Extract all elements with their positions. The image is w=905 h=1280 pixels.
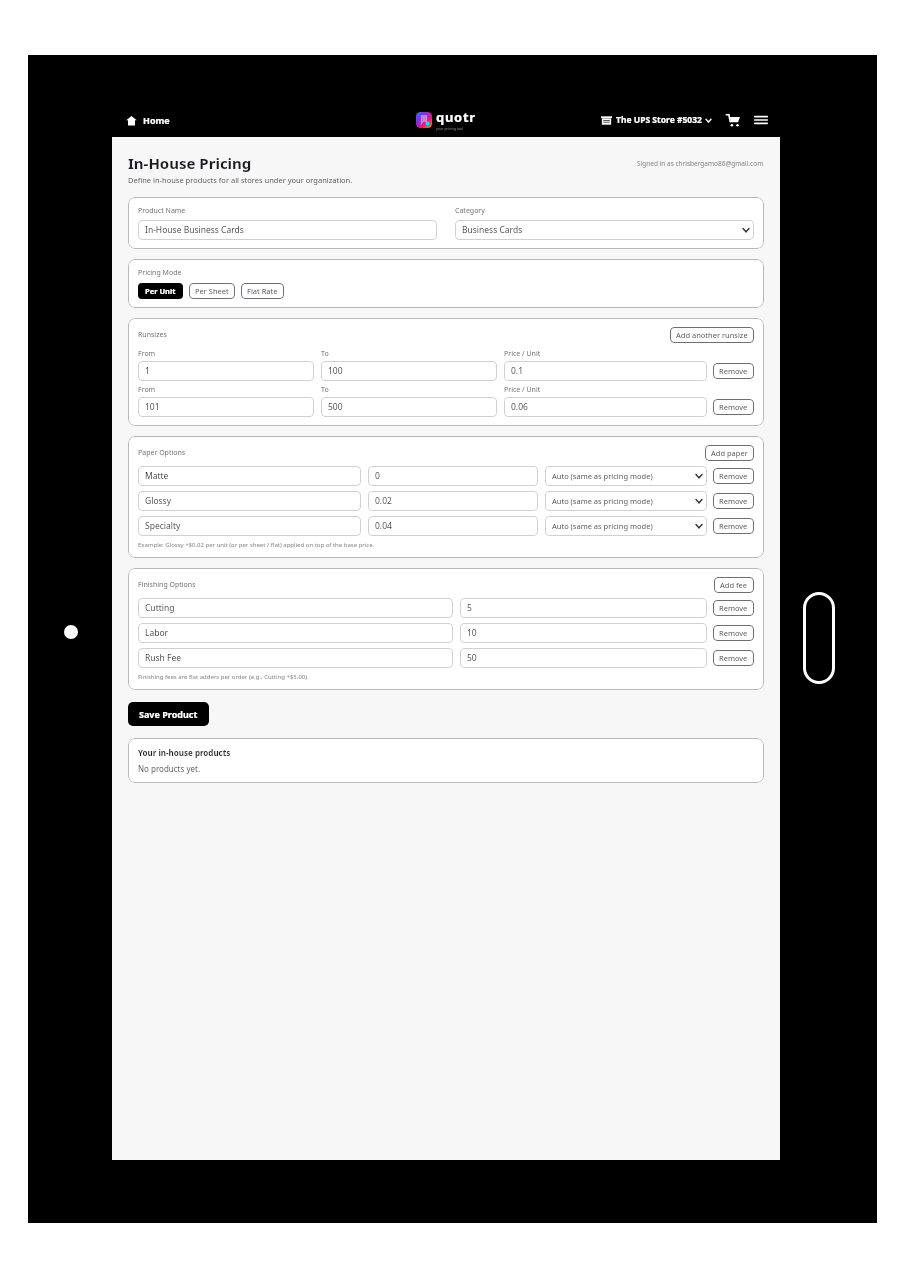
button[interactable]: The UPS Store #5032 xyxy=(598,111,714,129)
staticText: Cutting xyxy=(145,602,175,614)
button[interactable]: Remove xyxy=(713,625,754,641)
staticText: Remove xyxy=(719,628,748,638)
button[interactable]: 0.1 xyxy=(504,361,707,381)
staticText: 0.02 xyxy=(375,495,392,507)
button[interactable]: 5 xyxy=(460,598,707,618)
staticText: Add another runsize xyxy=(676,330,748,340)
button[interactable]: Auto (same as pricing mode) xyxy=(545,491,707,511)
button[interactable]: 0.04 xyxy=(368,516,538,536)
button[interactable]: Add paper xyxy=(705,445,754,461)
button[interactable]: Per Unit xyxy=(138,283,183,299)
button[interactable]: 0 xyxy=(368,466,538,486)
staticText: Remove xyxy=(719,496,748,506)
staticText: Define in-house products for all stores … xyxy=(128,175,353,185)
staticText: 10 xyxy=(467,627,477,639)
staticText: Business Cards xyxy=(462,224,740,236)
staticText: Auto (same as pricing mode) xyxy=(552,496,693,506)
staticText: 50 xyxy=(467,652,477,664)
staticText: Rush Fee xyxy=(145,652,182,664)
staticText: In-House Pricing xyxy=(128,153,252,173)
staticText: Price / Unit xyxy=(504,385,541,395)
button[interactable]: Remove xyxy=(713,468,754,484)
staticText: your pricing tool xyxy=(436,126,464,131)
staticText: Auto (same as pricing mode) xyxy=(552,521,693,531)
button[interactable]: In-House Business Cards xyxy=(138,220,437,240)
button[interactable]: Add another runsize xyxy=(670,327,754,343)
staticText: To xyxy=(321,349,329,359)
button[interactable]: Auto (same as pricing mode) xyxy=(545,466,707,486)
button[interactable]: 10 xyxy=(460,623,707,643)
staticText: Labor xyxy=(145,627,169,639)
button[interactable]: 0.02 xyxy=(368,491,538,511)
button[interactable]: Per Sheet xyxy=(189,283,235,299)
button[interactable]: 100 xyxy=(321,361,497,381)
staticText: Specialty xyxy=(145,520,181,532)
staticText: Price / Unit xyxy=(504,349,541,359)
button[interactable]: Auto (same as pricing mode) xyxy=(545,516,707,536)
button[interactable]: 0.06 xyxy=(504,397,707,417)
button[interactable]: Cart xyxy=(722,109,744,131)
button[interactable]: Labor xyxy=(138,623,453,643)
staticText: Runsizes xyxy=(138,330,167,340)
button[interactable]: 101 xyxy=(138,397,314,417)
button[interactable]: 1 xyxy=(138,361,314,381)
staticText: Remove xyxy=(719,471,748,481)
staticText: Remove xyxy=(719,521,748,531)
staticText: Your in-house products xyxy=(138,747,231,758)
staticText: 101 xyxy=(145,401,160,413)
staticText: 1 xyxy=(145,365,150,377)
button[interactable]: Remove xyxy=(713,518,754,534)
staticText: Remove xyxy=(719,653,748,663)
staticText: Example: Glossy +$0.02 per unit (or per … xyxy=(138,541,375,549)
button[interactable]: Remove xyxy=(713,399,754,415)
staticText: Add fee xyxy=(720,580,748,590)
staticText: From xyxy=(138,385,156,395)
staticText: Home xyxy=(143,114,170,126)
button[interactable]: Glossy xyxy=(138,491,361,511)
staticText: Save Product xyxy=(139,708,198,720)
button[interactable]: Add fee xyxy=(714,577,754,593)
button[interactable]: Menu xyxy=(750,109,772,131)
button[interactable]: 50 xyxy=(460,648,707,668)
staticText: 0.1 xyxy=(511,365,524,377)
button[interactable]: Remove xyxy=(713,363,754,379)
staticText: Per Sheet xyxy=(195,286,229,296)
staticText: Product Name xyxy=(138,206,186,216)
staticText: Category xyxy=(455,206,485,216)
staticText: quotr xyxy=(436,108,476,126)
button[interactable]: Remove xyxy=(713,650,754,666)
staticText: 5 xyxy=(467,602,472,614)
staticText: Signed in as chrisbergamo86@gmail.com xyxy=(637,159,764,168)
staticText: 0.04 xyxy=(375,520,392,532)
staticText: Auto (same as pricing mode) xyxy=(552,471,693,481)
staticText: The UPS Store #5032 xyxy=(616,114,702,126)
staticText: 500 xyxy=(328,401,343,413)
staticText: No products yet. xyxy=(138,763,201,774)
staticText: Flat Rate xyxy=(247,286,278,296)
staticText: 0.06 xyxy=(511,401,528,413)
staticText: 100 xyxy=(328,365,343,377)
staticText: Add paper xyxy=(711,448,748,458)
staticText: Remove xyxy=(719,366,748,376)
button[interactable]: Flat Rate xyxy=(241,283,284,299)
staticText: To xyxy=(321,385,329,395)
staticText: Glossy xyxy=(145,495,172,507)
staticText: Remove xyxy=(719,402,748,412)
button[interactable]: Remove xyxy=(713,600,754,616)
button[interactable]: Matte xyxy=(138,466,361,486)
button[interactable]: Specialty xyxy=(138,516,361,536)
staticText: Per Unit xyxy=(145,286,176,296)
button[interactable]: Remove xyxy=(713,493,754,509)
button[interactable]: Home xyxy=(122,110,174,130)
staticText: 0 xyxy=(375,470,380,482)
staticText: Matte xyxy=(145,470,169,482)
button[interactable]: Business Cards xyxy=(455,220,754,240)
button[interactable]: Cutting xyxy=(138,598,453,618)
button[interactable]: 500 xyxy=(321,397,497,417)
button[interactable]: Save Product xyxy=(128,702,209,726)
staticText: Pricing Mode xyxy=(138,268,182,278)
button[interactable]: Rush Fee xyxy=(138,648,453,668)
staticText: Finishing fees are flat adders per order… xyxy=(138,673,309,681)
staticText: Remove xyxy=(719,603,748,613)
staticText: In-House Business Cards xyxy=(145,224,244,236)
